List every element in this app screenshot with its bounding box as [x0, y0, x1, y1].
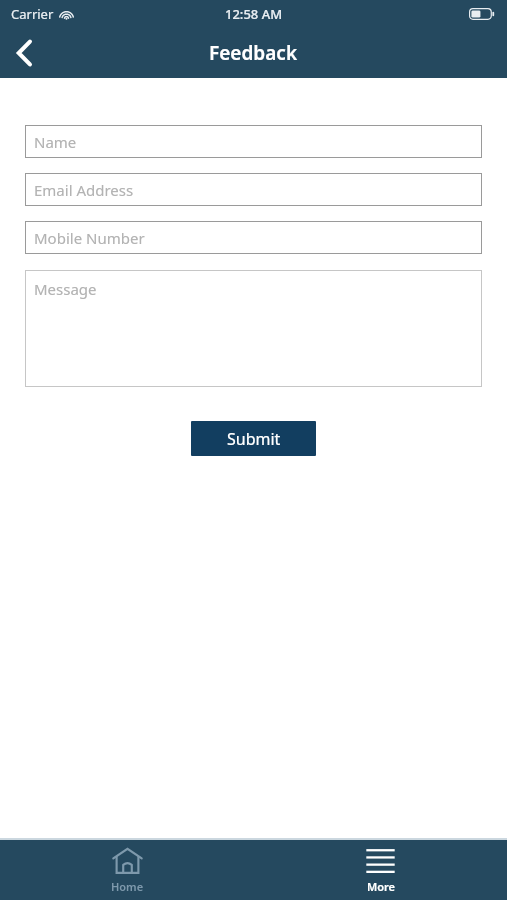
staticText: Mobile Number — [34, 228, 145, 248]
button[interactable]: Name — [25, 125, 482, 158]
button[interactable]: Back — [0, 29, 48, 77]
staticText: Name — [34, 132, 77, 152]
button[interactable]: Submit — [191, 421, 316, 456]
staticText: Email Address — [34, 180, 134, 200]
button[interactable]: Message — [25, 270, 482, 387]
staticText: Feedback — [209, 40, 298, 66]
staticText: Home — [111, 879, 144, 894]
staticText: 12:58 AM — [225, 5, 283, 23]
button[interactable]: Home — [84, 840, 170, 900]
staticText: Message — [34, 279, 97, 299]
button[interactable]: Email Address — [25, 173, 482, 206]
staticText: More — [367, 879, 395, 894]
staticText: Carrier — [11, 5, 54, 23]
button[interactable]: Mobile Number — [25, 221, 482, 254]
button[interactable]: More — [337, 840, 423, 900]
staticText: Submit — [227, 428, 281, 450]
